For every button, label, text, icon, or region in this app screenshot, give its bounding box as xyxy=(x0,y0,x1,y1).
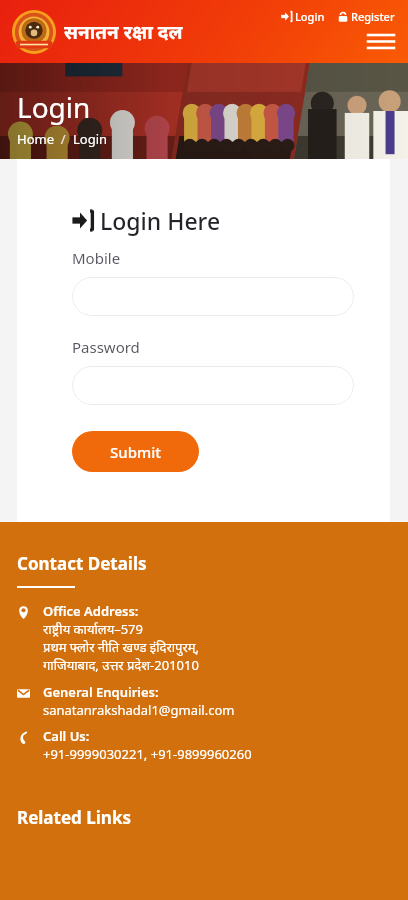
staticText: / xyxy=(54,130,73,148)
button[interactable]: Open navigation menu xyxy=(366,26,396,56)
button[interactable] xyxy=(72,277,354,316)
staticText: सनातन रक्षा दल xyxy=(64,19,183,45)
button[interactable]: General Enquiries: xyxy=(17,683,392,719)
staticText: राष्ट्रीय कार्यालय–579 xyxy=(43,620,143,638)
staticText: प्रथम फ्लोर नीति खण्ड इंदिरापुरम्, xyxy=(43,638,200,656)
button[interactable]: Call Us: xyxy=(17,727,392,763)
staticText: General Enquiries: xyxy=(43,683,159,701)
button[interactable]: Home xyxy=(17,130,54,148)
staticText: sanatanrakshadal1@gmail.com xyxy=(43,701,235,719)
button[interactable]: Login xyxy=(279,7,327,26)
staticText: Related Links xyxy=(17,806,131,829)
button[interactable]: सनातन रक्षा दल xyxy=(12,10,183,54)
button[interactable] xyxy=(72,366,354,405)
staticText: +91-9999030221, +91-9899960260 xyxy=(43,745,252,763)
staticText: Contact Details xyxy=(17,552,147,575)
staticText: Submit xyxy=(110,442,161,462)
staticText: Register xyxy=(351,9,395,24)
staticText: Office Address: xyxy=(43,602,139,620)
staticText: Mobile xyxy=(72,248,121,268)
staticText: Login Here xyxy=(100,205,221,236)
staticText: Login xyxy=(73,130,108,148)
staticText: Login xyxy=(17,88,91,126)
button[interactable]: Submit xyxy=(72,431,199,472)
button[interactable]: Register xyxy=(336,7,397,26)
staticText: गाजियाबाद, उत्तर प्रदेश-201010 xyxy=(43,656,199,674)
staticText: Call Us: xyxy=(43,727,90,745)
staticText: Password xyxy=(72,337,140,357)
staticText: Login xyxy=(295,9,325,24)
button[interactable]: Office Address: xyxy=(17,602,392,674)
